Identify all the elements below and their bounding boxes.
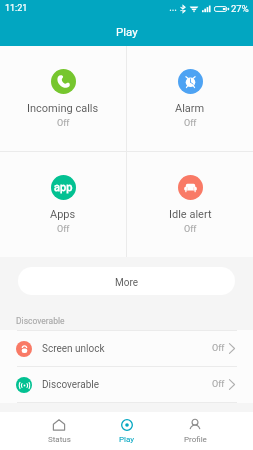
staticText: Off bbox=[57, 118, 70, 129]
staticText: Off bbox=[184, 224, 197, 235]
staticText: Play bbox=[116, 25, 138, 38]
staticText: Status bbox=[48, 435, 71, 444]
button[interactable]: Play bbox=[93, 412, 161, 450]
staticText: Off bbox=[212, 379, 225, 390]
button[interactable]: app bbox=[0, 152, 126, 257]
staticText: More bbox=[115, 277, 139, 289]
staticText: app bbox=[54, 181, 73, 194]
staticText: Discoverable bbox=[16, 316, 65, 326]
staticText: Idle alert bbox=[169, 208, 212, 221]
staticText: Off bbox=[212, 343, 225, 354]
staticText: Profile bbox=[184, 435, 207, 444]
button[interactable]: Profile bbox=[161, 412, 229, 450]
button[interactable]: Screen unlock bbox=[0, 331, 253, 366]
staticText: 11:21 bbox=[5, 3, 28, 14]
button[interactable]: Discoverable bbox=[0, 367, 253, 402]
staticText: Discoverable bbox=[42, 379, 100, 391]
button[interactable]: More bbox=[18, 267, 235, 295]
staticText: 27% bbox=[231, 3, 249, 14]
button[interactable]: Idle alert bbox=[127, 152, 253, 257]
button[interactable]: Incoming calls bbox=[0, 46, 126, 151]
staticText: Incoming calls bbox=[27, 102, 99, 115]
staticText: Alarm bbox=[175, 102, 205, 115]
staticText: Off bbox=[184, 118, 197, 129]
button[interactable]: Status bbox=[25, 412, 93, 450]
staticText: Apps bbox=[50, 208, 76, 221]
button[interactable]: Alarm bbox=[127, 46, 253, 151]
staticText: Play bbox=[119, 435, 135, 444]
staticText: Screen unlock bbox=[42, 343, 105, 355]
staticText: Off bbox=[57, 224, 70, 235]
